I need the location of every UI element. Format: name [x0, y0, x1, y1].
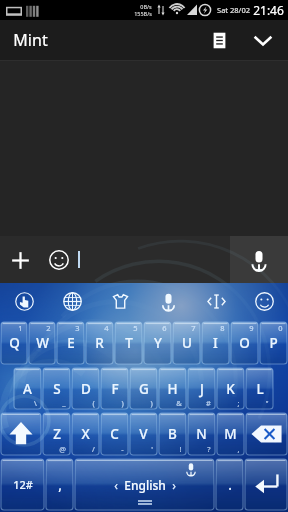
button[interactable]: I [202, 322, 229, 364]
staticText: Sat 28/02 [217, 5, 250, 15]
staticText: C [110, 425, 119, 443]
button[interactable]: Cursor control [192, 283, 240, 320]
staticText: Q [9, 334, 20, 352]
staticText: 155B/s [134, 10, 152, 17]
button[interactable]: B [159, 413, 186, 455]
button[interactable]: X [72, 413, 99, 455]
button[interactable]: Emoji [240, 283, 288, 320]
staticText: 9 [249, 323, 254, 333]
staticText: 0 [278, 323, 283, 333]
button[interactable]: W [29, 322, 55, 364]
staticText: D [81, 380, 91, 398]
button[interactable]: K [217, 368, 244, 409]
staticText: I [213, 334, 218, 352]
button[interactable]: U [173, 322, 200, 364]
button[interactable]: Theme [96, 283, 144, 320]
staticText: ) [121, 398, 124, 408]
staticText: . [228, 476, 232, 494]
button[interactable]: T [115, 322, 142, 364]
staticText: ) [150, 398, 153, 408]
button[interactable]: . [216, 459, 243, 510]
staticText: X [81, 425, 90, 443]
button[interactable]: Y [144, 322, 171, 364]
button[interactable]: Q [1, 322, 27, 364]
staticText: 8 [220, 323, 225, 333]
staticText: & [176, 398, 182, 408]
staticText: ‹ [114, 477, 118, 493]
button[interactable]: P [260, 322, 287, 364]
staticText: 21:46 [253, 2, 284, 18]
staticText: P [269, 334, 278, 352]
staticText: " [265, 398, 269, 408]
button[interactable]: Backspace [246, 413, 287, 455]
button[interactable]: Add attachment [0, 240, 40, 280]
staticText: A [23, 380, 32, 398]
staticText: 3 [75, 323, 80, 333]
staticText: Y [154, 334, 162, 352]
button[interactable]: Notes [202, 23, 236, 57]
staticText: H [167, 380, 178, 398]
staticText: 7 [191, 323, 196, 333]
button[interactable]: L [246, 368, 273, 409]
button[interactable]: Voice [144, 283, 192, 320]
button[interactable]: E [57, 322, 84, 364]
staticText: K [226, 380, 235, 398]
staticText: Mint [13, 29, 48, 51]
button[interactable]: D [72, 368, 99, 409]
staticText: F [111, 380, 119, 398]
button[interactable]: Enter [245, 459, 287, 510]
staticText: # [206, 398, 211, 408]
staticText: B [168, 425, 177, 443]
button[interactable]: Collapse [246, 23, 280, 57]
staticText: , [237, 444, 240, 454]
button[interactable]: Keyboard settings [0, 283, 48, 320]
button[interactable]: 12# [1, 459, 44, 510]
staticText: M [224, 425, 237, 443]
button[interactable]: J [188, 368, 215, 409]
staticText: - [121, 444, 124, 454]
staticText: R [95, 334, 104, 352]
button[interactable]: Z [43, 413, 70, 455]
staticText: \ [34, 398, 37, 408]
button[interactable]: N [188, 413, 215, 455]
staticText: 2 [46, 323, 51, 333]
button[interactable]: A [14, 368, 41, 409]
staticText: E [67, 334, 75, 352]
staticText: ; [237, 398, 240, 408]
staticText: 0B/s [140, 3, 152, 10]
staticText: / [92, 444, 95, 454]
button[interactable]: Shift [1, 413, 41, 455]
staticText: _ [62, 398, 66, 408]
button[interactable]: , [46, 459, 73, 510]
staticText: @ [59, 444, 66, 454]
button[interactable]: Voice input [230, 236, 288, 283]
staticText: 6 [162, 323, 167, 333]
staticText: Z [53, 425, 61, 443]
staticText: 4 [104, 323, 109, 333]
button[interactable]: F [101, 368, 128, 409]
staticText: ? [207, 444, 211, 454]
button[interactable]: H [159, 368, 186, 409]
button[interactable]: V [130, 413, 157, 455]
button[interactable]: G [130, 368, 157, 409]
staticText: J [200, 380, 204, 398]
button[interactable]: R [86, 322, 113, 364]
staticText: W [36, 334, 49, 352]
button[interactable]: O [231, 322, 258, 364]
staticText: › [172, 477, 176, 493]
staticText: ' [151, 444, 153, 454]
button[interactable]: Emoji [40, 241, 78, 279]
button[interactable]: C [101, 413, 128, 455]
button[interactable]: S [43, 368, 70, 409]
staticText: English [124, 477, 166, 493]
staticText: N [196, 425, 207, 443]
staticText: U [182, 334, 192, 352]
staticText: T [125, 334, 133, 352]
button[interactable]: ‹ [75, 459, 214, 510]
staticText: ( [92, 398, 95, 408]
staticText: 5 [133, 323, 138, 333]
staticText: , [58, 476, 62, 494]
button[interactable]: M [217, 413, 244, 455]
button[interactable]: Language [48, 283, 96, 320]
staticText: V [139, 425, 148, 443]
